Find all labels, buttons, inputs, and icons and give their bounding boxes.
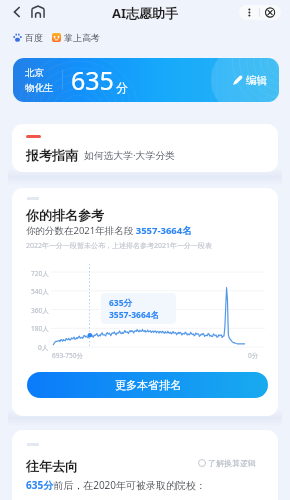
staticText: 635分前后，在2020年可被录取的院校： (26, 478, 207, 492)
staticText: 百度 (25, 32, 43, 43)
staticText: AI志愿助手 (112, 4, 179, 22)
staticText: 更多本省排名 (115, 378, 181, 392)
button[interactable]: Close (260, 5, 281, 20)
button[interactable]: 报考指南 (12, 124, 278, 172)
button[interactable]: 北京 (13, 58, 279, 102)
staticText: 你的分数在2021年排名段 3557-3664名 (26, 224, 192, 237)
staticText: 2022年一分一段暂未公布，上述排名参考2021年一分一段表 (26, 241, 213, 251)
button[interactable]: More options (239, 5, 259, 20)
button[interactable]: 百度 (13, 30, 100, 44)
staticText: 540人 (31, 287, 49, 296)
button[interactable]: 了解换算逻辑 (198, 458, 256, 468)
button[interactable]: 更多本省排名 (27, 372, 268, 398)
staticText: 635 (71, 63, 114, 97)
staticText: 360人 (31, 306, 49, 315)
button[interactable]: 编辑 (232, 74, 267, 87)
staticText: 693-750分 (52, 351, 83, 360)
button[interactable]: Home (31, 5, 45, 18)
staticText: 如何选大学·大学分类 (84, 149, 175, 162)
staticText: 635分 (109, 297, 133, 309)
staticText: 报考指南 (26, 147, 78, 163)
staticText: 分 (116, 80, 128, 95)
staticText: 物化生 (25, 82, 54, 94)
button[interactable]: Back (8, 3, 26, 21)
staticText: 180人 (31, 324, 49, 333)
staticText: 0分 (248, 351, 259, 360)
staticText: 720人 (31, 269, 49, 278)
staticText: 了解换算逻辑 (208, 458, 256, 468)
staticText: 掌上高考 (64, 32, 100, 43)
staticText: 北京 (25, 67, 44, 79)
staticText: 往年去向 (26, 458, 78, 474)
staticText: 你的排名参考 (26, 207, 104, 223)
staticText: 编辑 (246, 74, 267, 87)
staticText: 3557-3664名 (109, 309, 160, 321)
staticText: 0人 (38, 343, 49, 352)
